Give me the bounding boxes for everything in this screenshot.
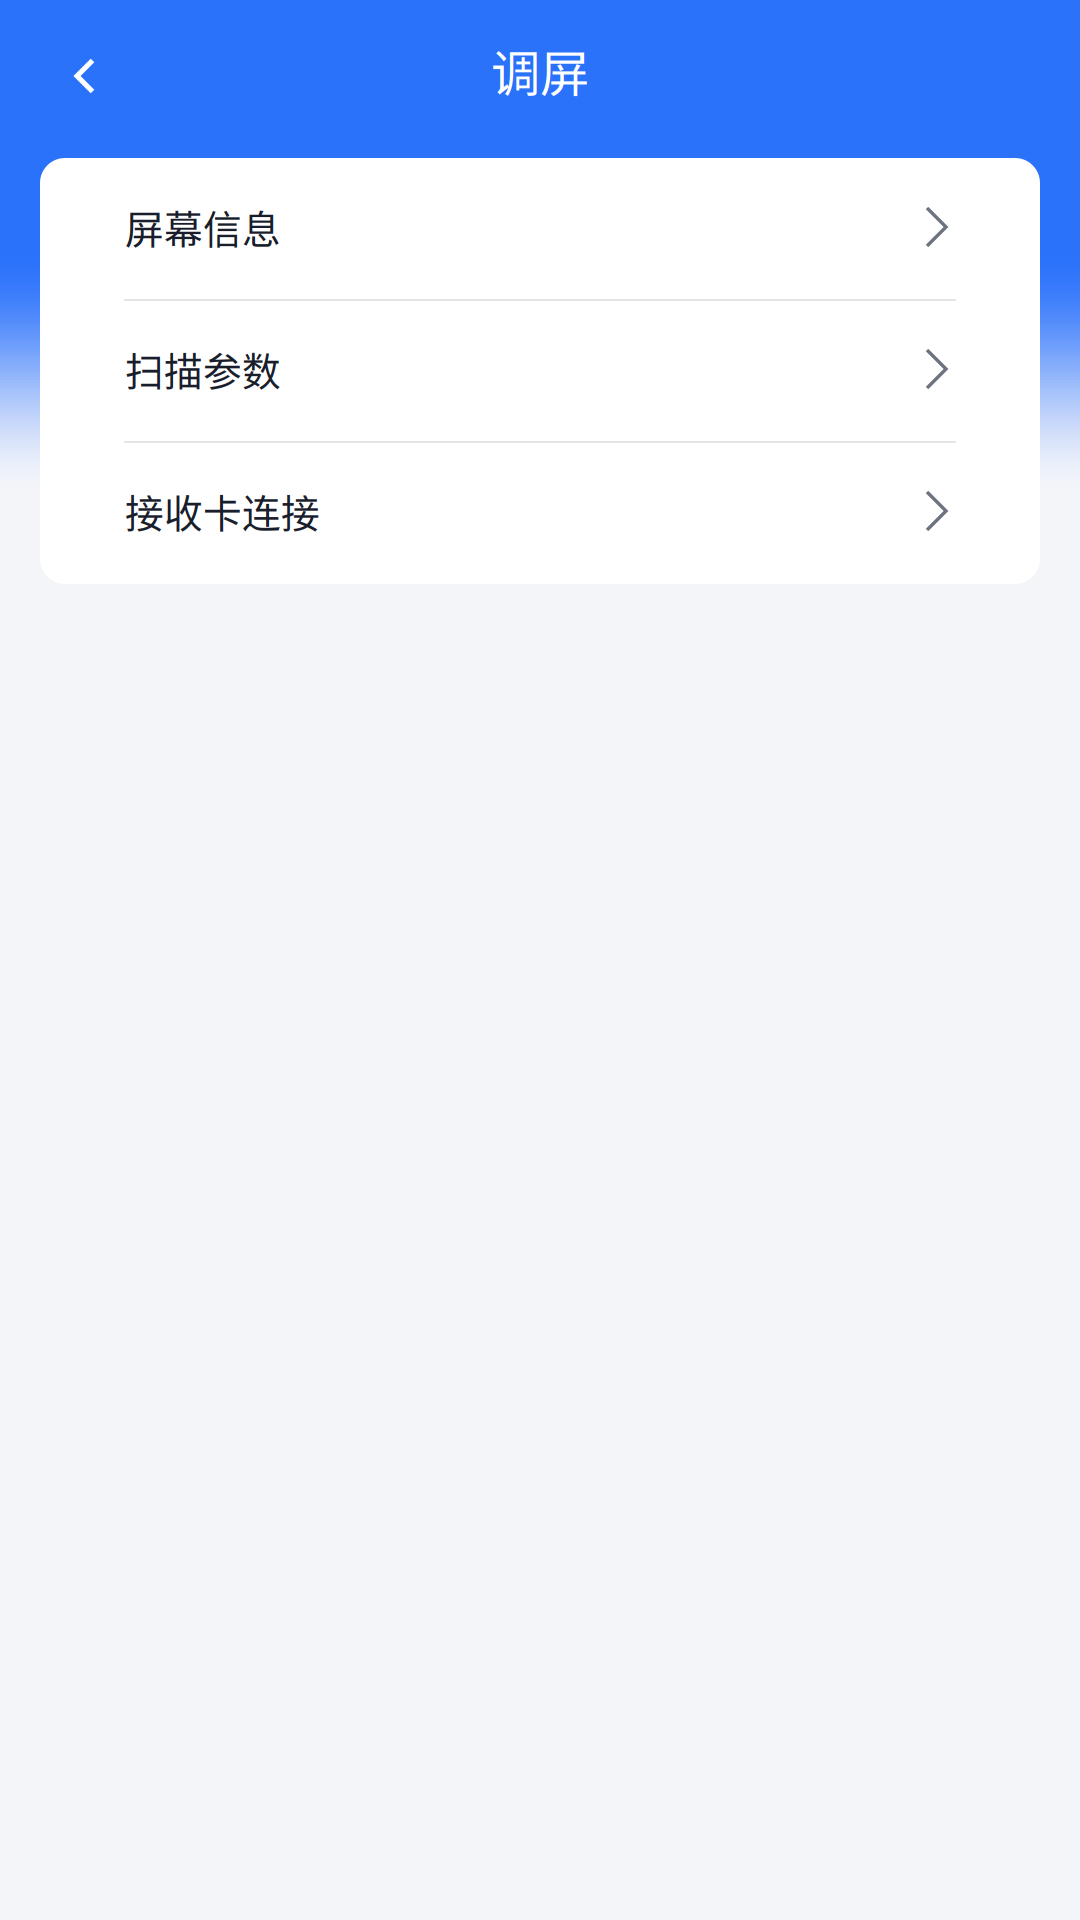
staticText: 屏幕信息 [125, 199, 281, 255]
staticText: 调屏 [491, 34, 589, 106]
button[interactable]: 扫描参数 [40, 300, 1040, 442]
button[interactable]: 屏幕信息 [40, 158, 1040, 300]
staticText: 扫描参数 [125, 341, 281, 397]
staticText: 接收卡连接 [125, 483, 320, 539]
button[interactable]: Back [0, 31, 132, 119]
button[interactable]: 接收卡连接 [40, 442, 1040, 584]
